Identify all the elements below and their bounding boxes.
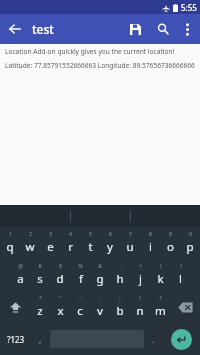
button[interactable]: 9 [160,227,180,259]
staticText: m [155,303,166,319]
staticText: o [167,239,174,255]
button[interactable]: 5 [80,227,100,259]
staticText: 5 [89,231,92,238]
staticText: y [107,239,113,255]
staticText: 6 [109,231,112,238]
button[interactable]: Save [122,14,149,44]
button[interactable]: & [90,259,110,291]
staticText: ) [180,263,182,270]
button[interactable]: ?123 [0,323,32,355]
button[interactable]: . [145,323,162,355]
staticText: , [39,333,42,345]
staticText: ; [119,295,121,302]
staticText: z [37,303,43,319]
staticText: . [152,333,155,345]
button[interactable]: " [50,291,70,323]
staticText: l [179,271,182,287]
staticText: 0 [189,231,192,238]
staticText: 9 [169,231,172,238]
staticText: h [116,271,124,287]
staticText: ?123 [7,334,25,345]
staticText: 1 [9,231,12,238]
staticText: p [186,239,194,255]
button[interactable]: 0 [180,227,200,259]
button[interactable]: ) [170,259,190,291]
staticText: % [78,263,83,270]
button[interactable]: Enter [171,329,192,350]
button[interactable]: * [30,291,50,323]
staticText: j [139,271,142,287]
button[interactable]: Backspace [170,291,200,323]
button[interactable]: ' [70,291,90,323]
staticText: 5:55 [181,2,197,13]
staticText: Latitude: 77.85791552666663 Longitude: 8… [5,61,195,70]
button[interactable]: Navigate up [0,14,30,44]
staticText: ' [79,295,81,302]
staticText: # [38,263,42,270]
staticText: n [136,303,144,319]
staticText: a [17,271,24,287]
staticText: g [96,271,104,287]
button[interactable]: , [32,323,49,355]
staticText: ? [159,295,162,302]
button[interactable]: $ [50,259,70,291]
staticText: u [126,239,134,255]
button[interactable]: 8 [140,227,160,259]
staticText: c [77,303,83,319]
staticText: e [47,239,54,255]
staticText: - [119,263,121,270]
staticText: r [68,239,73,255]
staticText: k [157,271,164,287]
button[interactable]: More options [176,14,198,44]
staticText: " [59,295,62,302]
staticText: 7 [129,231,132,238]
button[interactable]: Shift [0,291,30,323]
button[interactable]: Search [149,14,176,44]
staticText: 8 [149,231,152,238]
staticText: t [88,239,93,255]
staticText: * [39,295,42,302]
staticText: x [57,303,64,319]
staticText: Location Add-on quickly gives you the cu… [5,47,175,56]
staticText: test [32,21,54,37]
button[interactable]: : [90,291,110,323]
staticText: 2 [29,231,32,238]
staticText: ( [160,263,162,270]
button[interactable]: % [70,259,90,291]
staticText: 4 [69,231,72,238]
staticText: f [79,271,83,287]
staticText: 3 [49,231,52,238]
button[interactable]: 7 [120,227,140,259]
button[interactable]: # [30,259,50,291]
staticText: d [56,271,64,287]
staticText: i [149,239,152,255]
button[interactable]: 6 [100,227,120,259]
staticText: s [37,271,43,287]
button[interactable]: - [110,259,130,291]
staticText: w [25,239,35,255]
button[interactable]: ( [150,259,170,291]
button[interactable]: ! [130,291,150,323]
button[interactable]: @ [10,259,30,291]
button[interactable]: + [130,259,150,291]
button[interactable]: 2 [20,227,40,259]
button[interactable]: ; [110,291,130,323]
staticText: v [97,303,103,319]
button[interactable]: 4 [60,227,80,259]
staticText: b [116,303,124,319]
staticText: + [139,263,142,270]
button[interactable]: 1 [0,227,20,259]
button[interactable]: 3 [40,227,60,259]
staticText: q [6,239,14,255]
staticText: @ [18,263,23,270]
staticText: & [98,263,102,270]
staticText: $ [59,263,62,270]
staticText: ! [139,295,141,302]
staticText: : [99,295,101,302]
button[interactable]: ? [150,291,170,323]
